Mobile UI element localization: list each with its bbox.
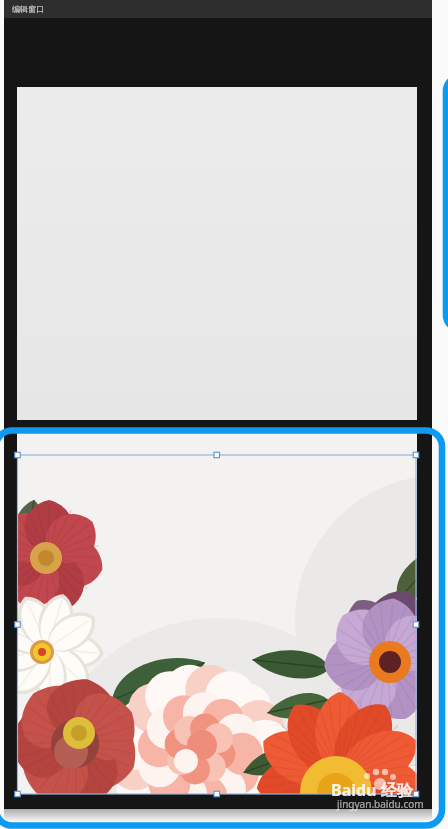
button[interactable]: Floral image layer <box>17 433 417 794</box>
staticText: 编辑窗口 <box>12 4 44 14</box>
button[interactable]: 编辑窗口 <box>4 0 432 18</box>
staticText: Baidu 经验 <box>331 779 413 801</box>
staticText: jingyan.baidu.com <box>337 797 424 811</box>
